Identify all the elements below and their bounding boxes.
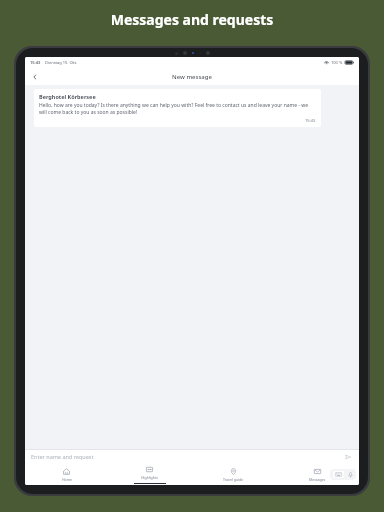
button[interactable]: Home [25, 464, 108, 485]
staticText: Travel guide [223, 477, 244, 482]
staticText: 100 % [331, 60, 343, 65]
button[interactable]: Travel guide [191, 464, 275, 485]
staticText: New message [172, 73, 212, 81]
button[interactable]: Dictate [348, 472, 353, 478]
staticText: Messages [309, 477, 326, 482]
staticText: Hello, how are you today? Is there anyth… [39, 102, 316, 116]
button[interactable]: Highlights [108, 464, 191, 485]
button[interactable]: Keyboard [335, 472, 342, 477]
staticText: Dienstag 15. Okt. [45, 60, 78, 65]
button[interactable]: Messages [275, 464, 359, 485]
staticText: 15:43 [305, 118, 316, 123]
staticText: 15:43 [30, 60, 41, 65]
staticText: Berghotel Körbersee [39, 93, 96, 100]
button[interactable]: Back [29, 71, 41, 83]
button[interactable]: Send [343, 452, 353, 462]
staticText: Home [62, 477, 72, 482]
button[interactable]: Berghotel Körbersee [34, 89, 321, 127]
staticText: Highlights [141, 475, 158, 480]
button[interactable]: Enter name and request [31, 453, 343, 460]
staticText: Messages and requests [0, 10, 384, 29]
